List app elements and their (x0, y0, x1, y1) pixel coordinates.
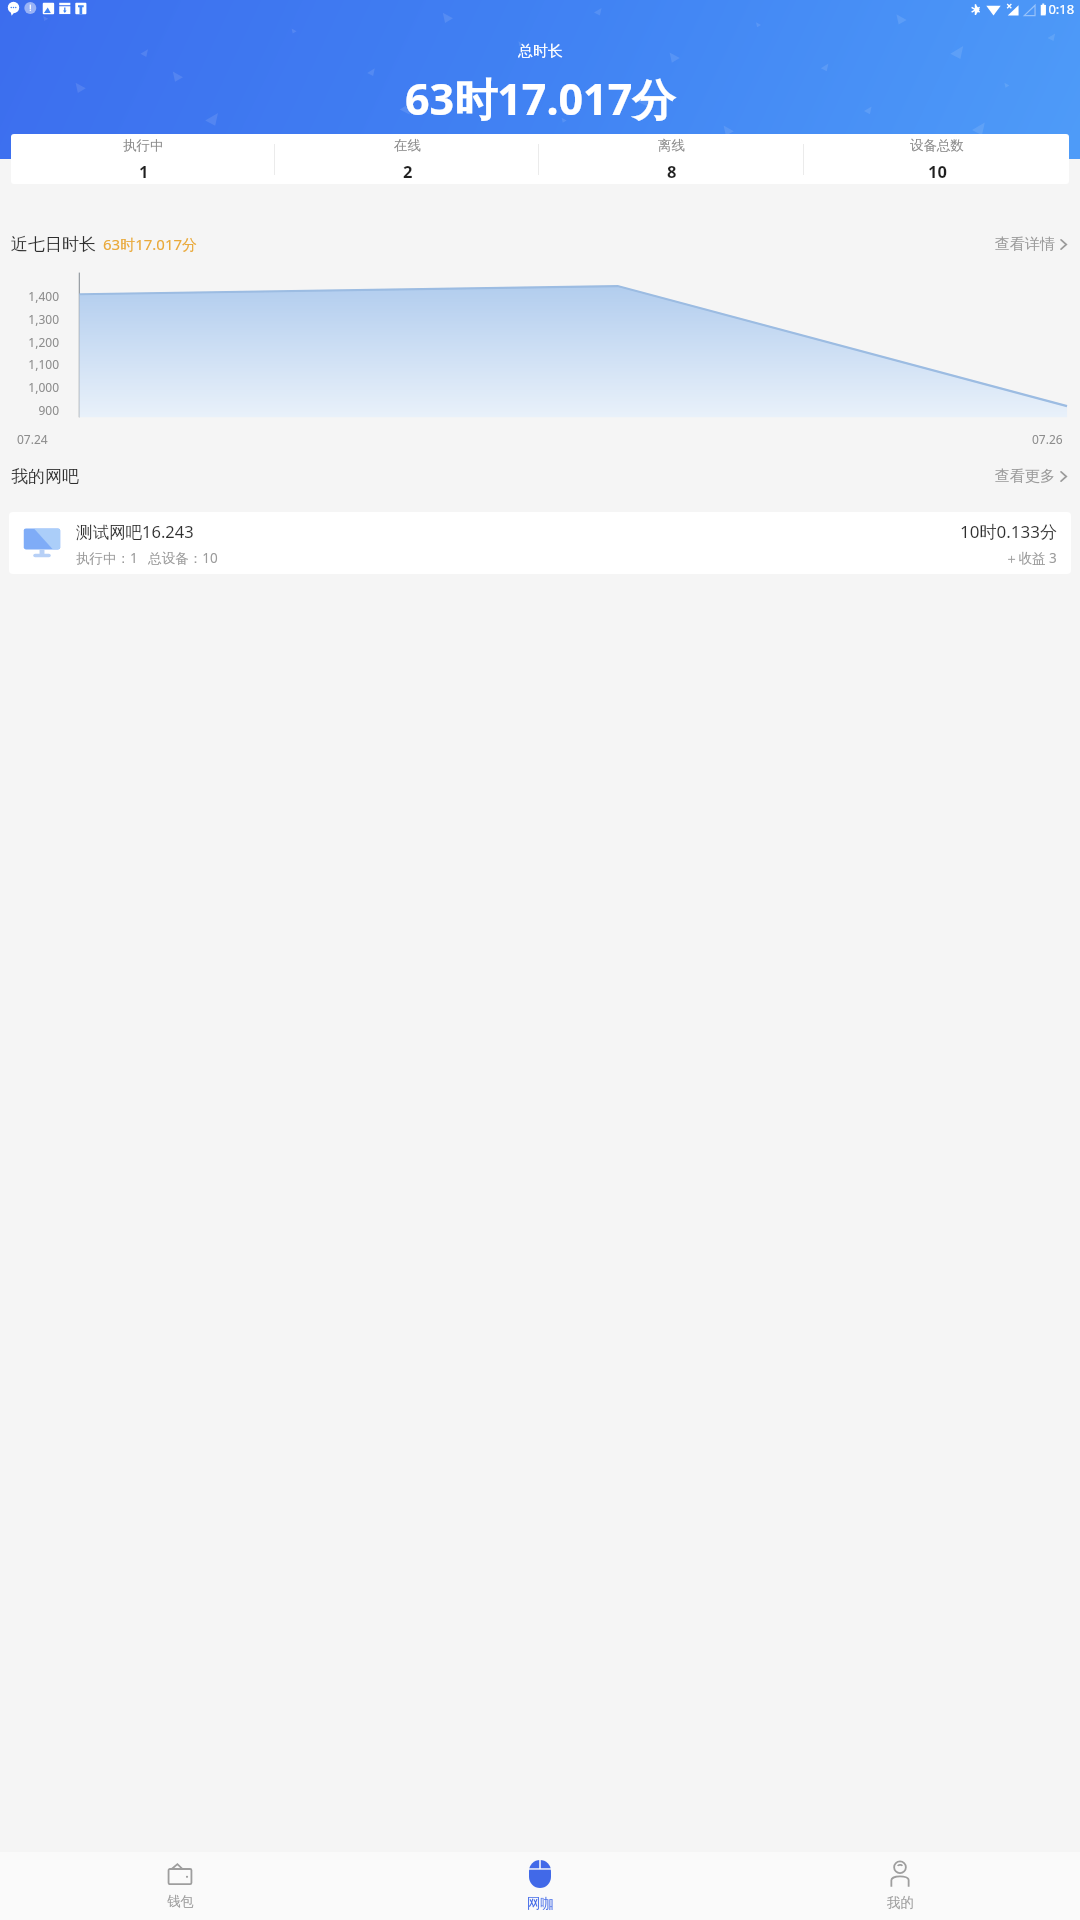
button[interactable]: 查看更多 (993, 461, 1069, 492)
staticText: 63时17.017分 (103, 234, 198, 254)
staticText: 设备总数 (910, 137, 964, 154)
staticText: ＋收益 3 (1005, 549, 1057, 567)
staticText: 执行中 (123, 137, 164, 154)
staticText: 07.26 (1032, 431, 1063, 447)
staticText: 测试网吧16.243 (76, 520, 194, 543)
staticText: 离线 (658, 137, 685, 154)
staticText: 在线 (394, 137, 421, 154)
staticText: 1,300 (28, 311, 59, 327)
staticText: 查看详情 (995, 235, 1055, 254)
button[interactable]: 钱包 (0, 1852, 360, 1920)
staticText: 1,400 (28, 288, 59, 304)
staticText: 10 (928, 160, 947, 182)
staticText: 1,000 (28, 379, 59, 395)
staticText: 查看更多 (995, 467, 1055, 486)
staticText: 1,200 (28, 334, 59, 350)
staticText: 我的 (887, 1894, 914, 1911)
staticText: 8 (667, 160, 677, 182)
staticText: 1 (139, 160, 149, 182)
staticText: 2 (403, 160, 413, 182)
button[interactable]: 我的 (720, 1852, 1080, 1920)
staticText: 07.24 (17, 431, 48, 447)
staticText: 总时长 (518, 42, 563, 61)
button[interactable]: 查看详情 (993, 229, 1069, 260)
staticText: 近七日时长 (11, 234, 96, 255)
button[interactable]: 执行中 (11, 134, 1069, 184)
staticText: 执行中：1 总设备：10 (76, 549, 218, 567)
staticText: 我的网吧 (11, 466, 79, 487)
staticText: 网咖 (527, 1895, 554, 1912)
staticText: 10时0.133分 (960, 520, 1057, 543)
staticText: 1,100 (28, 356, 59, 372)
staticText: 钱包 (167, 1893, 194, 1910)
staticText: 63时17.017分 (405, 69, 676, 128)
staticText: 10:18 (1041, 0, 1075, 16)
button[interactable]: 网咖 (360, 1852, 720, 1920)
staticText: 900 (38, 402, 59, 418)
button[interactable]: 测试网吧16.243 (9, 512, 1071, 574)
